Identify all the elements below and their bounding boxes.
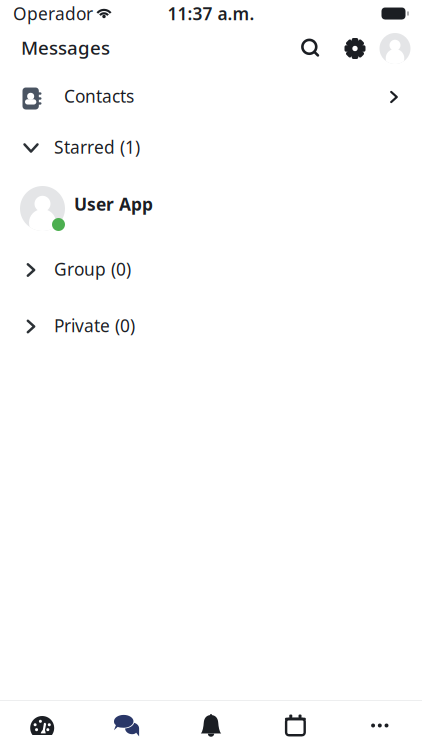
staticText: 11:37 a.m. bbox=[167, 2, 254, 25]
button[interactable]: Notifications bbox=[169, 701, 253, 749]
staticText: Private (0) bbox=[54, 314, 135, 337]
button[interactable]: Group (0) bbox=[0, 240, 422, 300]
button[interactable]: Contacts bbox=[0, 70, 422, 124]
button[interactable]: Private (0) bbox=[0, 300, 422, 353]
button[interactable]: Profile bbox=[377, 28, 413, 68]
button[interactable]: Starred (1) bbox=[0, 124, 422, 172]
staticText: Group (0) bbox=[54, 257, 131, 280]
button[interactable]: Calendar bbox=[253, 701, 338, 749]
button[interactable]: More bbox=[338, 701, 422, 749]
staticText: User App bbox=[74, 192, 153, 215]
button[interactable]: Search bbox=[289, 28, 333, 68]
staticText: Messages bbox=[21, 35, 110, 60]
button[interactable]: User App bbox=[0, 172, 422, 240]
staticText: Operador bbox=[13, 2, 93, 25]
button[interactable]: Dashboard bbox=[0, 701, 84, 749]
staticText: Starred (1) bbox=[54, 135, 140, 158]
button[interactable]: Messages bbox=[84, 701, 169, 749]
button[interactable]: Settings bbox=[333, 28, 377, 68]
staticText: Contacts bbox=[64, 84, 134, 107]
